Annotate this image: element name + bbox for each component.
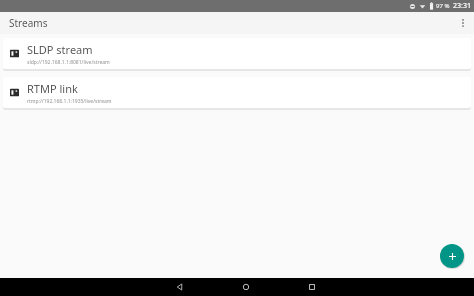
button[interactable]: Recent apps — [300, 278, 324, 296]
button[interactable]: Home — [234, 278, 258, 296]
staticText: RTMP link — [27, 81, 78, 96]
staticText: SLDP stream — [27, 42, 93, 57]
button[interactable]: RTMP link — [3, 77, 471, 108]
staticText: sldp://192.168.1.1:8081/live/stream — [27, 59, 110, 66]
button[interactable]: More options — [452, 12, 474, 34]
staticText: 97 % — [436, 2, 450, 10]
button[interactable]: Add stream — [440, 244, 464, 268]
staticText: 23:31 — [453, 1, 471, 11]
button[interactable]: SLDP stream — [3, 38, 471, 69]
button[interactable]: Back — [168, 278, 192, 296]
staticText: rtmp://192.168.1.1:1935/live/stream — [27, 98, 112, 105]
staticText: Streams — [9, 16, 48, 30]
